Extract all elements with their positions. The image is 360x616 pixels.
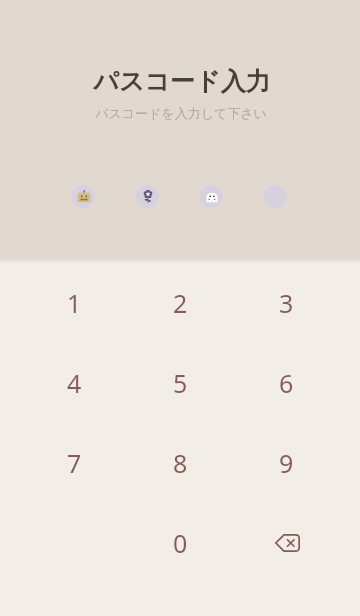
staticText: 9: [279, 446, 294, 480]
staticText: 5: [173, 366, 188, 400]
button[interactable]: 0: [157, 520, 203, 566]
staticText: 0: [173, 526, 188, 560]
button[interactable]: 7: [51, 440, 97, 486]
button[interactable]: 3: [263, 280, 309, 326]
staticText: パスコードを入力して下さい: [95, 105, 267, 121]
staticText: 7: [67, 446, 82, 480]
button[interactable]: 6: [263, 360, 309, 406]
staticText: 1: [67, 286, 82, 320]
button[interactable]: Delete: [263, 520, 309, 566]
button[interactable]: 1: [51, 280, 97, 326]
button[interactable]: 8: [157, 440, 203, 486]
button[interactable]: 9: [263, 440, 309, 486]
staticText: 2: [173, 286, 188, 320]
staticText: 4: [67, 366, 82, 400]
staticText: 3: [279, 286, 294, 320]
button[interactable]: 4: [51, 360, 97, 406]
button[interactable]: 2: [157, 280, 203, 326]
button[interactable]: 5: [157, 360, 203, 406]
staticText: 8: [173, 446, 188, 480]
staticText: パスコード入力: [93, 66, 271, 97]
staticText: 6: [279, 366, 294, 400]
